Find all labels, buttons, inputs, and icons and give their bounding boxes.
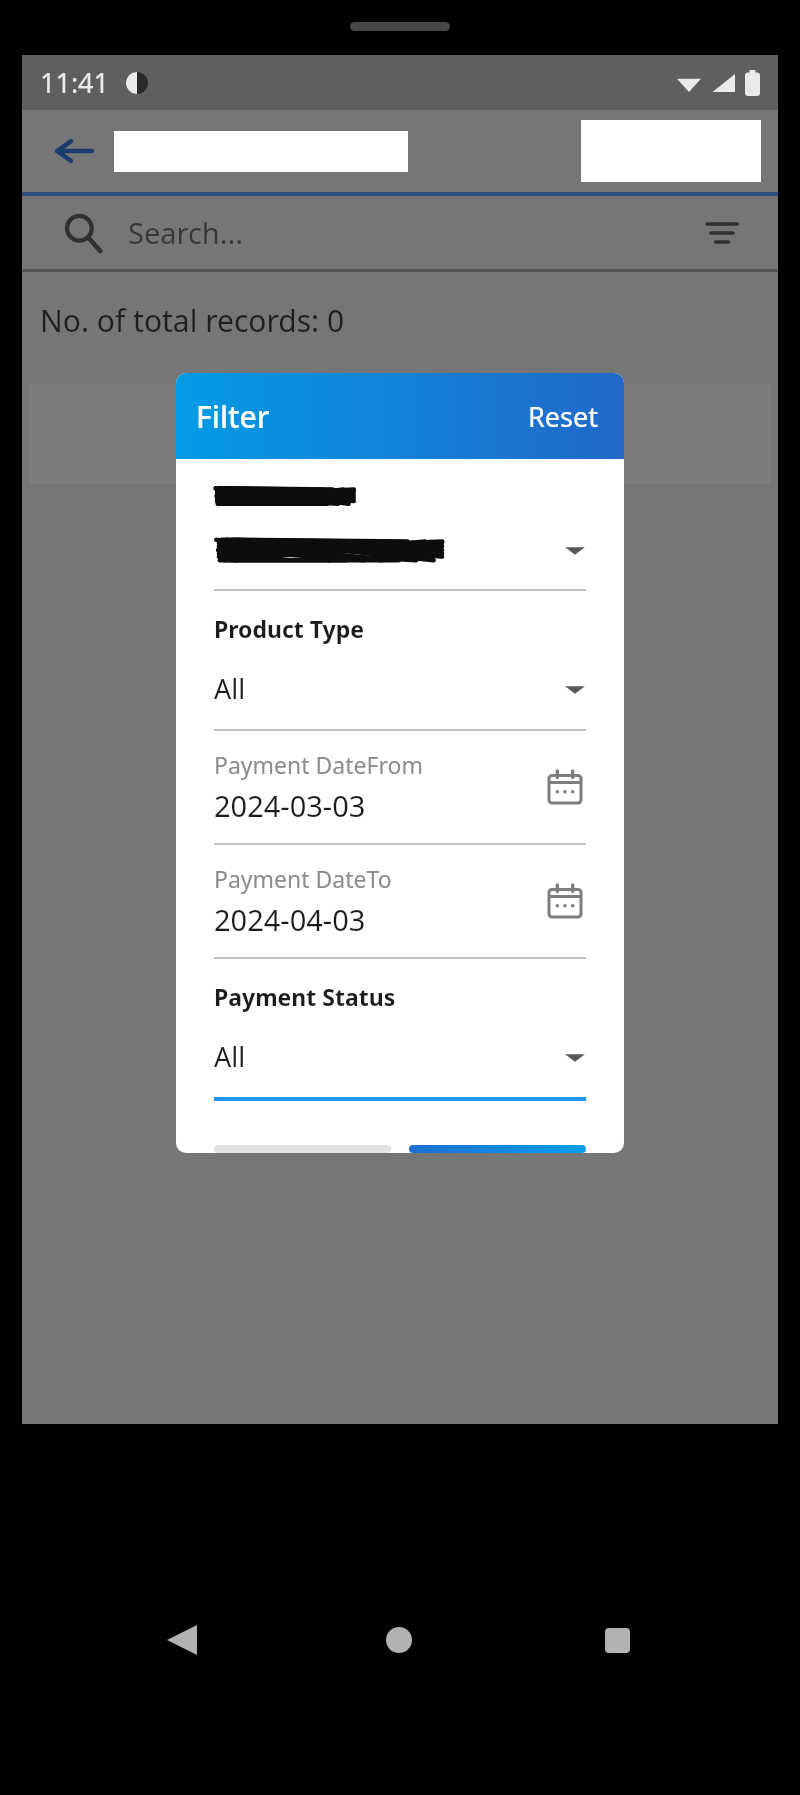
staticText: All [214,1038,246,1075]
button[interactable]: Apply [409,1145,586,1153]
button[interactable]: Payment DateFrom [214,731,586,845]
staticText: Apply [461,1145,535,1153]
staticText: Payment DateTo [214,863,392,894]
button[interactable]: Payment DateTo [214,845,586,959]
staticText: 2024-04-03 [214,900,366,939]
staticText: 11:41 [40,64,110,101]
button[interactable]: Home [364,1605,434,1675]
staticText: All [214,670,246,707]
staticText: Reset [528,398,598,435]
button[interactable]: Search [56,206,110,260]
staticText: Filter [196,396,270,437]
button[interactable]: Back [48,125,100,177]
staticText: 2024-03-03 [214,786,366,825]
staticText: Search... [128,213,244,252]
staticText: Product Type [214,613,365,644]
staticText: Payment DateFrom [214,749,423,780]
button[interactable]: Pick date [544,766,586,808]
button[interactable]: Pick date [544,880,586,922]
button[interactable]: Payment Status [214,959,586,1101]
button[interactable]: Filter [698,209,746,257]
button[interactable]: Product Type [214,591,586,731]
staticText: Payment Status [214,981,396,1012]
button[interactable]: Reset [522,392,604,441]
button[interactable] [214,483,586,591]
button[interactable]: Back [147,1605,217,1675]
staticText: No. of total records: 0 [40,300,345,341]
button[interactable]: Recents [582,1605,652,1675]
